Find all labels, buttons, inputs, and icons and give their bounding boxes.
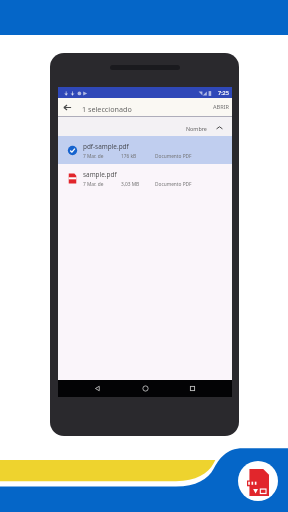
button[interactable]: Nombre <box>182 118 227 135</box>
button[interactable]: sample.pdf <box>58 164 232 192</box>
staticText: 3,03 MB <box>121 181 155 188</box>
staticText: 7 Mar. de <box>83 181 121 188</box>
button[interactable]: PDF app icon <box>238 461 278 501</box>
staticText: Documento PDF <box>155 153 192 160</box>
staticText: 7:25 <box>218 89 229 96</box>
staticText: 176 kB <box>121 153 155 160</box>
button[interactable]: pdf-sample.pdf <box>58 136 232 164</box>
button[interactable]: Home <box>137 380 154 397</box>
staticText: Documento PDF <box>155 181 192 188</box>
staticText: 7 Mar. de <box>83 153 121 160</box>
button[interactable]: Recents <box>184 380 201 397</box>
button[interactable]: Back <box>89 380 106 397</box>
staticText: Nombre <box>186 125 207 132</box>
staticText: 1 seleccionado <box>82 104 132 114</box>
staticText: pdf-sample.pdf <box>83 142 129 151</box>
staticText: ABRIR <box>213 103 230 111</box>
button[interactable]: ABRIR <box>208 99 232 115</box>
staticText: sample.pdf <box>83 170 117 179</box>
button[interactable]: Back <box>58 98 77 116</box>
